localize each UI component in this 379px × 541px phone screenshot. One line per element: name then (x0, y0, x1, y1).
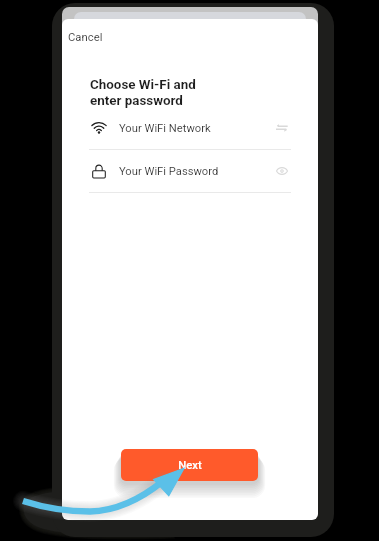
staticText: Your WiFi Password (119, 165, 219, 178)
button[interactable]: Your WiFi Network (89, 107, 291, 149)
button[interactable]: Your WiFi Password (89, 150, 291, 192)
staticText: Next (178, 459, 202, 472)
other: Show password (276, 167, 288, 175)
button[interactable]: Next (121, 449, 258, 481)
other: Tap Next (0, 0, 379, 541)
other: Switch network (276, 124, 288, 132)
staticText: Choose Wi-Fi and enter password (90, 77, 196, 108)
button[interactable]: Cancel (62, 27, 115, 48)
staticText: Cancel (68, 31, 103, 44)
staticText: Your WiFi Network (119, 122, 211, 135)
